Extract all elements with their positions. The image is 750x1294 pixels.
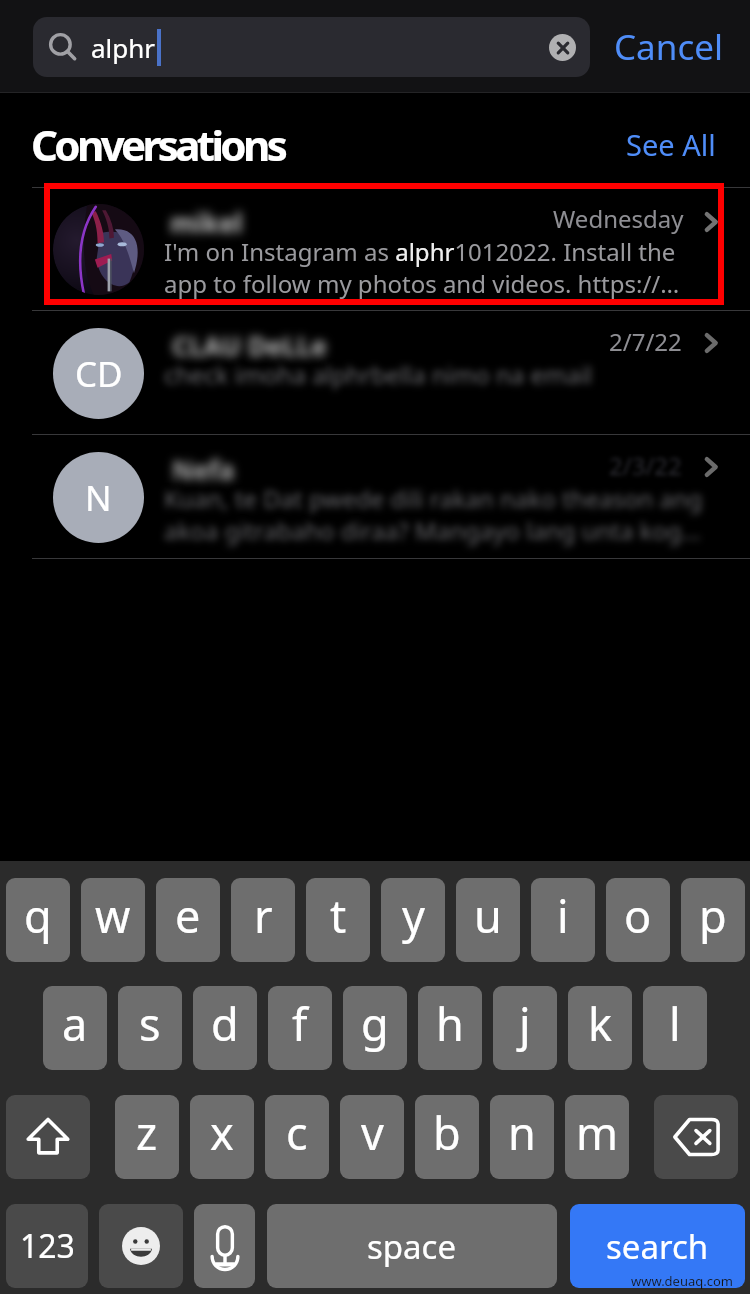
- staticText: h: [436, 993, 464, 1054]
- staticText: y: [402, 885, 425, 946]
- staticText: Nefa: [172, 452, 235, 480]
- button[interactable]: See All: [626, 125, 716, 164]
- staticText: alphr: [91, 30, 156, 65]
- button[interactable]: Emoji: [99, 1204, 183, 1288]
- button[interactable]: m: [565, 1095, 629, 1179]
- button[interactable]: h: [418, 986, 482, 1070]
- button[interactable]: c: [265, 1095, 329, 1179]
- button[interactable]: t: [306, 878, 370, 962]
- staticText: i: [557, 885, 569, 946]
- button[interactable]: Clear text: [549, 34, 576, 61]
- staticText: Conversations: [31, 116, 285, 173]
- staticText: u: [474, 885, 502, 946]
- button[interactable]: space: [267, 1204, 557, 1288]
- button[interactable]: o: [606, 878, 670, 962]
- button[interactable]: q: [6, 878, 70, 962]
- staticText: f: [292, 993, 308, 1054]
- staticText: www.deuaq.com: [631, 1272, 734, 1290]
- button[interactable]: alphr: [33, 17, 590, 77]
- button[interactable]: Voice input: [194, 1204, 255, 1288]
- button[interactable]: n: [490, 1095, 554, 1179]
- staticText: space: [367, 1224, 457, 1269]
- staticText: n: [508, 1102, 536, 1163]
- staticText: a: [62, 993, 88, 1054]
- staticText: w: [95, 885, 131, 946]
- button[interactable]: x: [190, 1095, 254, 1179]
- button[interactable]: k: [568, 986, 632, 1070]
- staticText: k: [588, 993, 613, 1054]
- staticText: mikel: [170, 205, 243, 233]
- button[interactable]: Cancel: [614, 17, 723, 77]
- staticText: I'm on Instagram as alphr1012022. Instal…: [164, 235, 684, 300]
- staticText: CLAU DeLLe: [172, 328, 327, 356]
- staticText: e: [175, 885, 201, 946]
- staticText: Kuan, te Dat pwede dili rakan nako theas…: [164, 482, 709, 514]
- button[interactable]: f: [268, 986, 332, 1070]
- button[interactable]: p: [681, 878, 745, 962]
- staticText: t: [330, 885, 347, 946]
- staticText: Wednesday: [553, 202, 684, 235]
- button[interactable]: v: [340, 1095, 404, 1179]
- button[interactable]: j: [493, 986, 557, 1070]
- button[interactable]: mikel: [0, 188, 750, 310]
- button[interactable]: w: [81, 878, 145, 962]
- staticText: CD: [75, 350, 123, 398]
- button[interactable]: z: [115, 1095, 179, 1179]
- button[interactable]: r: [231, 878, 295, 962]
- staticText: b: [433, 1102, 461, 1163]
- staticText: c: [286, 1102, 308, 1163]
- button[interactable]: a: [43, 986, 107, 1070]
- staticText: See All: [626, 125, 716, 164]
- staticText: akoa gitrabaho diraa? Mangayo lang unta …: [164, 514, 701, 546]
- staticText: Cancel: [614, 23, 723, 71]
- staticText: x: [210, 1102, 234, 1163]
- staticText: p: [699, 885, 727, 946]
- staticText: 123: [20, 1224, 75, 1268]
- staticText: v: [361, 1102, 384, 1163]
- button[interactable]: u: [456, 878, 520, 962]
- button[interactable]: b: [415, 1095, 479, 1179]
- staticText: search: [606, 1224, 709, 1269]
- staticText: 2/3/22: [609, 449, 682, 482]
- staticText: check imoha alphrbella nimo na email: [164, 358, 593, 390]
- staticText: 2/7/22: [609, 325, 682, 358]
- button[interactable]: 123: [6, 1204, 88, 1288]
- staticText: g: [361, 993, 389, 1054]
- button[interactable]: N: [0, 435, 750, 558]
- staticText: s: [139, 993, 161, 1054]
- staticText: N: [85, 474, 112, 522]
- staticText: r: [254, 885, 273, 946]
- staticText: d: [211, 993, 239, 1054]
- button[interactable]: Shift: [6, 1095, 90, 1179]
- staticText: l: [669, 993, 681, 1054]
- button[interactable]: l: [643, 986, 707, 1070]
- staticText: o: [624, 885, 652, 946]
- button[interactable]: y: [381, 878, 445, 962]
- staticText: m: [576, 1102, 619, 1163]
- button[interactable]: g: [343, 986, 407, 1070]
- button[interactable]: i: [531, 878, 595, 962]
- staticText: j: [519, 993, 531, 1054]
- button[interactable]: CD: [0, 311, 750, 434]
- button[interactable]: s: [118, 986, 182, 1070]
- button[interactable]: d: [193, 986, 257, 1070]
- button[interactable]: Backspace: [654, 1095, 738, 1179]
- staticText: q: [24, 885, 52, 946]
- button[interactable]: search: [570, 1204, 745, 1288]
- button[interactable]: e: [156, 878, 220, 962]
- staticText: z: [136, 1102, 158, 1163]
